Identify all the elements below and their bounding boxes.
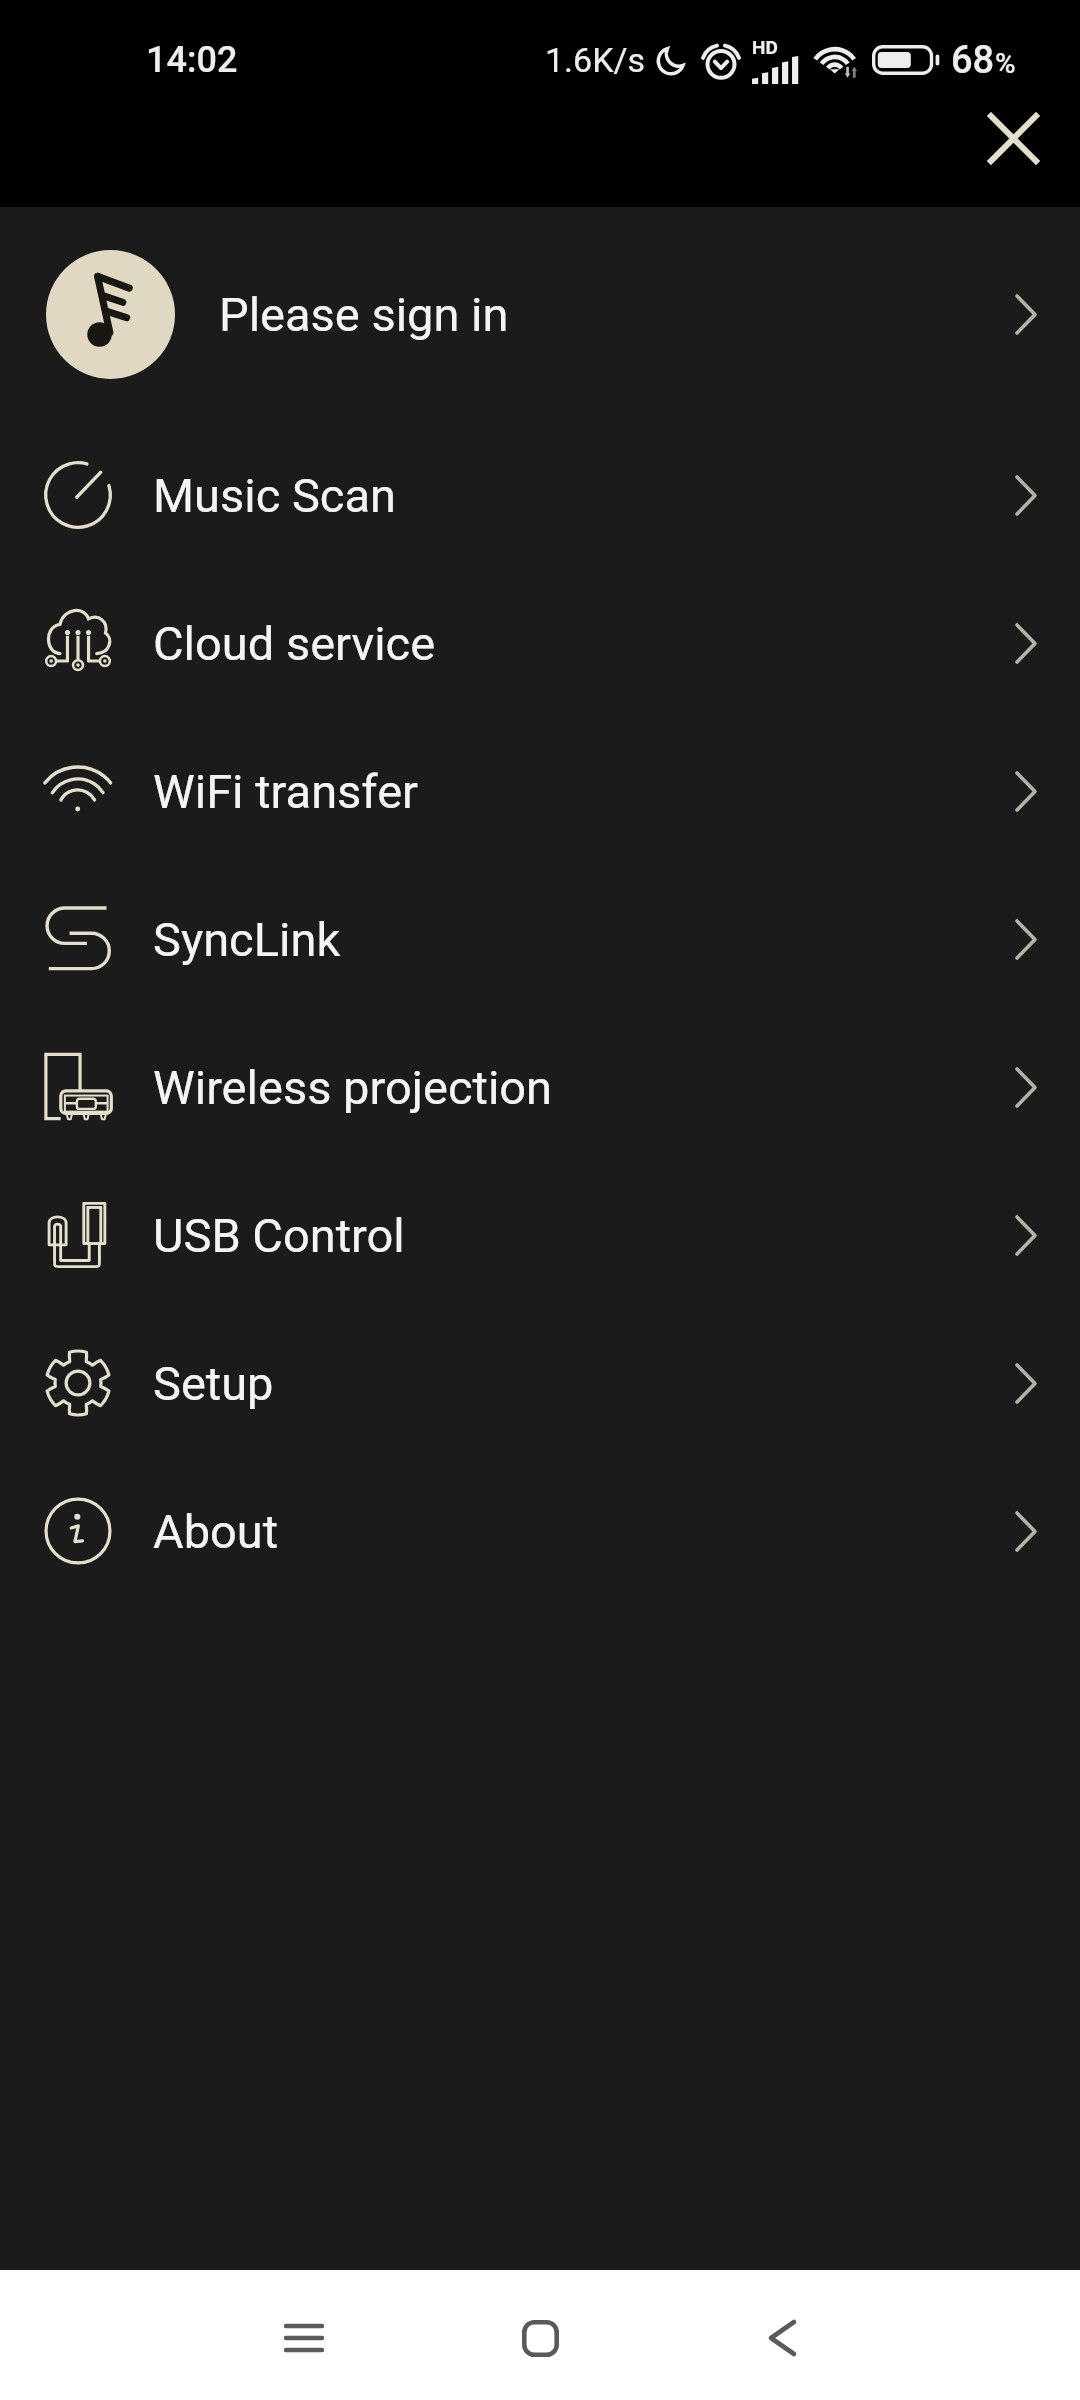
staticText: USB Control (153, 1208, 405, 1263)
button[interactable]: Wireless projection (0, 1013, 1080, 1161)
staticText: 68 (951, 38, 995, 83)
button[interactable]: Back (678, 2279, 886, 2397)
staticText: Setup (153, 1356, 274, 1411)
button[interactable]: Close (967, 92, 1059, 184)
staticText: Please sign in (219, 287, 509, 342)
button[interactable]: Recent apps (200, 2279, 408, 2397)
staticText: HD (752, 36, 778, 58)
button[interactable]: USB Control (0, 1161, 1080, 1309)
staticText: Cloud service (153, 616, 436, 671)
staticText: 1.6K/s (545, 40, 646, 80)
staticText: WiFi transfer (153, 764, 418, 819)
button[interactable]: Home (436, 2279, 644, 2397)
button[interactable]: Cloud service (0, 569, 1080, 717)
staticText: Music Scan (153, 468, 396, 523)
button[interactable]: SyncLink (0, 865, 1080, 1013)
button[interactable]: WiFi transfer (0, 717, 1080, 865)
staticText: 14:02 (146, 39, 238, 81)
button[interactable]: About (0, 1457, 1080, 1605)
button[interactable]: Music Scan (0, 421, 1080, 569)
staticText: About (153, 1504, 279, 1559)
button[interactable]: Setup (0, 1309, 1080, 1457)
button[interactable]: Please sign in (0, 207, 1080, 421)
staticText: SyncLink (153, 912, 341, 967)
staticText: % (995, 47, 1016, 80)
staticText: Wireless projection (153, 1060, 553, 1115)
